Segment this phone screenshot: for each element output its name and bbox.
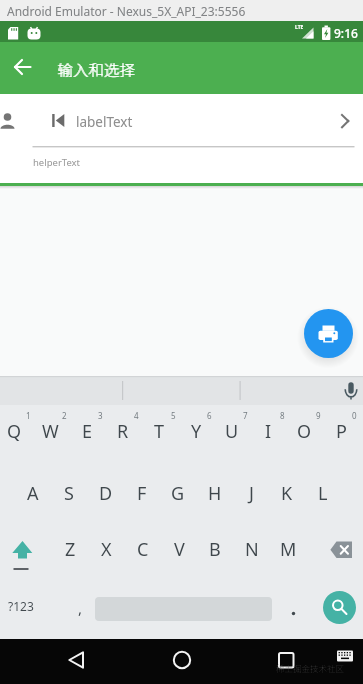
staticText: F xyxy=(137,481,147,506)
staticText: X xyxy=(101,537,112,562)
staticText: 7 xyxy=(243,410,248,421)
button[interactable]: G xyxy=(165,476,191,510)
staticText: 1 xyxy=(26,410,31,421)
button[interactable]: N xyxy=(239,532,265,566)
button[interactable]: J xyxy=(238,476,264,510)
staticText: labelText xyxy=(76,113,133,131)
staticText: Q xyxy=(7,419,22,444)
button[interactable]: P xyxy=(328,414,354,448)
staticText: LTE xyxy=(295,24,304,31)
button[interactable] xyxy=(323,591,356,624)
staticText: 9:16 xyxy=(334,25,358,41)
button[interactable]: F xyxy=(129,476,155,510)
staticText: 3 xyxy=(98,410,103,421)
button[interactable] xyxy=(162,645,202,677)
staticText: 4 xyxy=(134,410,139,421)
button[interactable]: D xyxy=(93,476,119,510)
button[interactable] xyxy=(322,535,358,565)
button[interactable]: H xyxy=(202,476,228,510)
staticText: T xyxy=(154,419,165,444)
button[interactable] xyxy=(8,53,38,83)
staticText: 2 xyxy=(62,410,67,421)
staticText: V xyxy=(174,537,185,562)
staticText: N xyxy=(245,537,259,562)
button[interactable] xyxy=(266,645,306,677)
staticText: O xyxy=(297,419,312,444)
staticText: J xyxy=(249,481,254,506)
staticText: 输入和选择 xyxy=(58,58,136,80)
button[interactable]: Y xyxy=(183,414,209,448)
staticText: 5 xyxy=(171,410,176,421)
button[interactable]: W xyxy=(37,414,63,448)
staticText: A xyxy=(27,481,39,506)
button[interactable]: , xyxy=(78,598,83,618)
staticText: R xyxy=(117,419,129,444)
button[interactable] xyxy=(336,378,360,402)
button[interactable]: Z xyxy=(57,532,83,566)
button[interactable]: X xyxy=(93,532,119,566)
button[interactable]: O xyxy=(291,414,317,448)
button[interactable]: L xyxy=(310,476,336,510)
staticText: I xyxy=(265,419,272,444)
button[interactable]: ?123 xyxy=(8,598,34,614)
button[interactable]: T xyxy=(146,414,172,448)
button[interactable] xyxy=(56,645,96,677)
button[interactable] xyxy=(0,94,363,141)
staticText: S xyxy=(64,481,74,506)
button[interactable]: R xyxy=(110,414,136,448)
staticText: 稀土掘金技术社区 xyxy=(276,662,345,674)
staticText: Android Emulator - Nexus_5X_API_23:5556 xyxy=(7,3,246,19)
staticText: 8 xyxy=(280,410,285,421)
staticText: L xyxy=(318,481,328,506)
staticText: helperText xyxy=(33,156,81,169)
button[interactable]: M xyxy=(275,532,301,566)
button[interactable] xyxy=(6,535,38,565)
staticText: M xyxy=(280,537,297,562)
staticText: Z xyxy=(65,537,76,562)
button[interactable]: A xyxy=(20,476,46,510)
staticText: 9 xyxy=(316,410,321,421)
button[interactable]: E xyxy=(74,414,100,448)
button[interactable]: U xyxy=(219,414,245,448)
staticText: W xyxy=(42,419,59,444)
staticText: G xyxy=(171,481,185,506)
button[interactable] xyxy=(304,309,353,358)
button[interactable]: I xyxy=(255,414,281,448)
button[interactable]: Q xyxy=(1,414,27,448)
staticText: K xyxy=(281,481,293,506)
staticText: 6 xyxy=(207,410,212,421)
staticText: D xyxy=(99,481,113,506)
staticText: 0 xyxy=(352,410,357,421)
staticText: B xyxy=(209,537,221,562)
button[interactable]: B xyxy=(202,532,228,566)
button[interactable] xyxy=(288,600,300,618)
button[interactable]: S xyxy=(56,476,82,510)
staticText: C xyxy=(137,537,149,562)
staticText: E xyxy=(82,419,93,444)
button[interactable]: K xyxy=(274,476,300,510)
button[interactable]: C xyxy=(130,532,156,566)
staticText: Y xyxy=(191,419,202,444)
staticText: 输入和选择 xyxy=(57,58,135,80)
staticText: H xyxy=(208,481,222,506)
button[interactable]: V xyxy=(166,532,192,566)
staticText: U xyxy=(225,419,239,444)
staticText: P xyxy=(336,419,347,444)
